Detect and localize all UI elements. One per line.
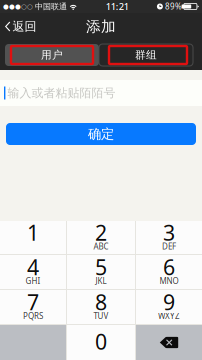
button[interactable]: 确定	[6, 123, 196, 145]
staticText: 5	[95, 253, 107, 281]
button[interactable]: 3	[136, 221, 202, 255]
button[interactable]: 9	[136, 290, 202, 325]
button[interactable]: 5	[67, 255, 135, 290]
staticText: WXYZ	[158, 311, 180, 321]
staticText: 6	[163, 253, 175, 281]
button[interactable]: 0	[67, 325, 135, 360]
staticText: 用户	[41, 48, 63, 61]
staticText: 输入或者粘贴陌陌号	[7, 86, 115, 100]
button[interactable]: 8	[67, 290, 135, 325]
staticText: 0	[95, 327, 107, 356]
staticText: JKL	[95, 276, 106, 286]
staticText: 群组	[135, 48, 157, 61]
staticText: 89%	[165, 1, 182, 12]
staticText: DEF	[162, 241, 176, 252]
staticText: ABC	[93, 241, 108, 252]
button[interactable]: 1	[0, 221, 66, 255]
staticText: PQRS	[23, 311, 43, 321]
staticText: 9	[163, 288, 175, 316]
button[interactable]: Delete	[136, 325, 202, 360]
button[interactable]: 群组	[99, 44, 193, 66]
staticText: 2	[95, 218, 107, 247]
staticText: 4	[27, 253, 39, 281]
staticText: 返回	[12, 19, 36, 34]
staticText: MNO	[159, 276, 178, 286]
staticText: ○○	[21, 3, 33, 10]
button[interactable]: 用户	[5, 44, 99, 66]
staticText: 7	[27, 288, 39, 316]
staticText: TUV	[93, 311, 108, 321]
staticText: GHI	[25, 276, 40, 286]
button[interactable]: 4	[0, 255, 66, 290]
staticText: 添加	[86, 17, 116, 35]
staticText: ●●●	[3, 3, 21, 10]
button[interactable]: 2	[67, 221, 135, 255]
staticText: 11:21	[106, 0, 129, 13]
staticText: 中国联通	[35, 2, 67, 11]
staticText: 8	[95, 288, 107, 316]
staticText: 1	[27, 218, 39, 247]
button[interactable]: 6	[136, 255, 202, 290]
staticText: 3	[163, 218, 175, 247]
button[interactable]: 返回	[0, 13, 42, 40]
button[interactable]: 7	[0, 290, 66, 325]
staticText: 确定	[88, 126, 114, 142]
